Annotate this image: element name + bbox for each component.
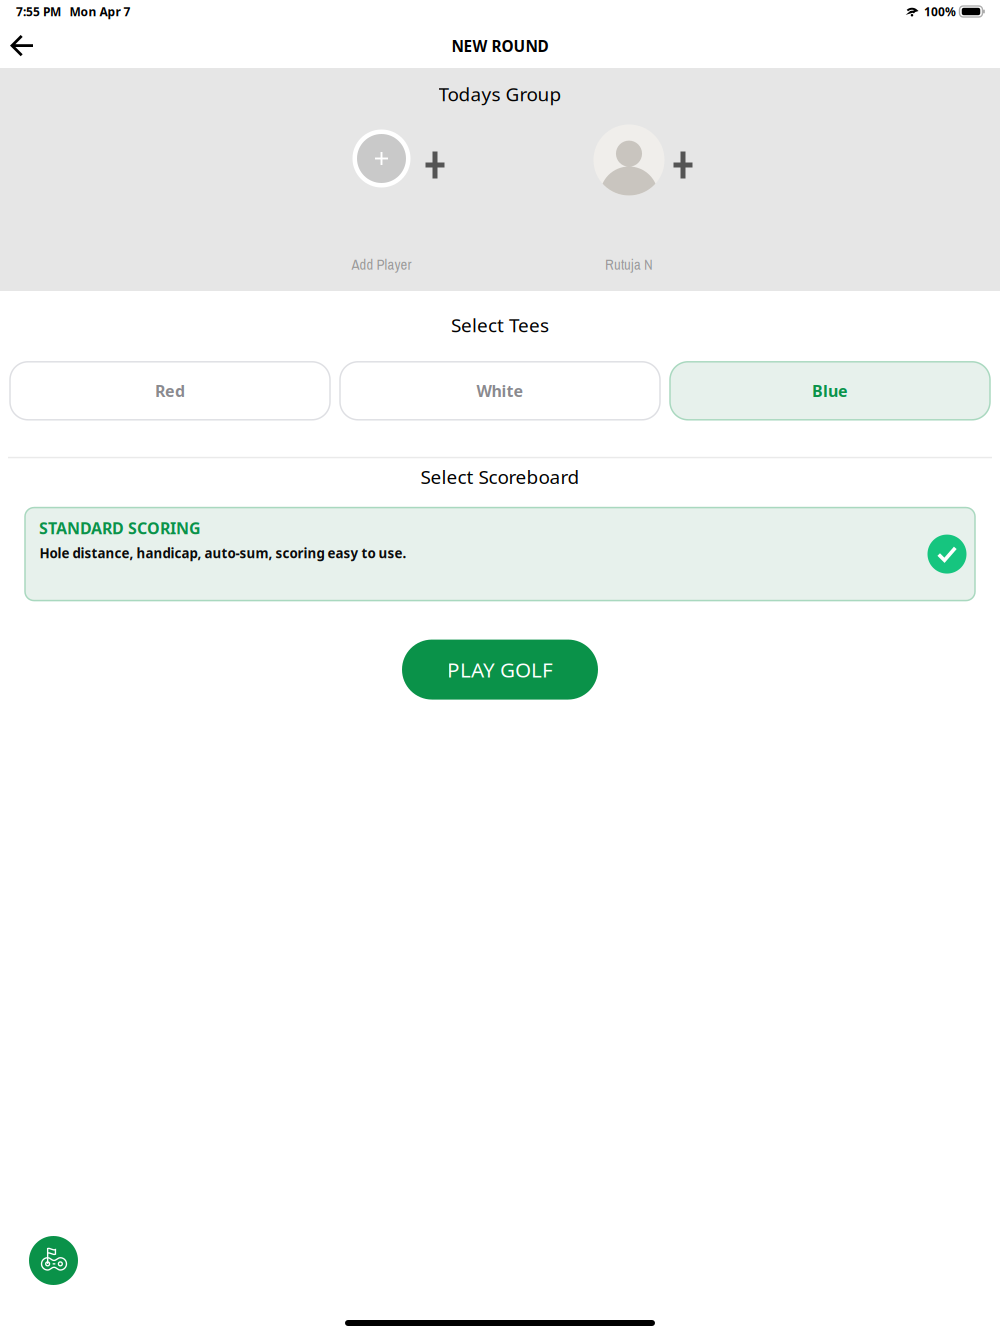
staticText: 7:55 PM xyxy=(16,3,61,20)
button[interactable]: Add Player xyxy=(0,68,1000,291)
staticText: 100% xyxy=(924,3,956,20)
button[interactable]: Red xyxy=(10,362,330,420)
staticText: Red xyxy=(155,380,185,402)
staticText: Select Tees xyxy=(451,312,549,338)
staticText: Todays Group xyxy=(438,81,561,107)
staticText: Rutuja N xyxy=(605,255,653,274)
staticText: NEW ROUND xyxy=(451,36,548,56)
button[interactable]: Back xyxy=(0,25,45,67)
button[interactable]: PLAY GOLF xyxy=(402,640,598,700)
button[interactable]: White xyxy=(340,362,660,420)
button[interactable]: STANDARD SCORING xyxy=(25,508,975,601)
staticText: Mon Apr 7 xyxy=(69,3,130,20)
staticText: Add Player xyxy=(351,255,411,274)
staticText: Blue xyxy=(812,380,848,402)
staticText: White xyxy=(476,380,523,402)
button[interactable]: Blue xyxy=(670,362,990,420)
button[interactable]: Rutuja N xyxy=(0,68,1000,291)
staticText: STANDARD SCORING xyxy=(39,517,201,539)
button[interactable]: Courses xyxy=(29,1236,78,1285)
staticText: Hole distance, handicap, auto-sum, scori… xyxy=(39,544,406,562)
staticText: PLAY GOLF xyxy=(447,655,553,684)
staticText: Select Scoreboard xyxy=(420,464,579,490)
